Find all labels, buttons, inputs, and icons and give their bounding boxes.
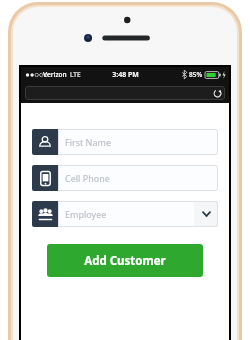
button[interactable]: First Name <box>32 129 218 155</box>
button[interactable]: Add Customer <box>47 244 203 277</box>
button[interactable]: Cell Phone <box>32 165 218 191</box>
staticText: Verizon <box>43 70 67 79</box>
staticText: First Name <box>65 136 218 148</box>
staticText: Employee <box>65 208 194 220</box>
staticText: LTE <box>70 70 81 79</box>
staticText: Cell Phone <box>65 172 218 184</box>
staticText: 85% <box>189 70 203 79</box>
button[interactable]: Employee <box>32 201 218 227</box>
staticText: Add Customer <box>84 253 166 269</box>
staticText: 3:48 PM <box>112 70 139 80</box>
button[interactable]: Open dropdown <box>194 201 218 227</box>
button[interactable]: Reload <box>212 88 222 98</box>
